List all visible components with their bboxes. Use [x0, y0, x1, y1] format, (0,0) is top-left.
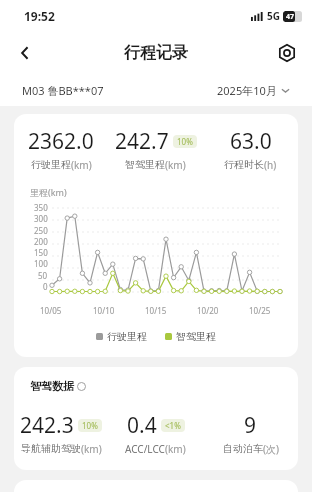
staticText: ACC/LCC: [125, 442, 165, 456]
staticText: 0: [43, 281, 48, 292]
button[interactable]: Back: [8, 36, 42, 70]
staticText: 250: [34, 225, 48, 236]
staticText: 300: [34, 213, 48, 224]
staticText: 10/10: [93, 305, 115, 316]
staticText: (h): [264, 158, 277, 172]
button[interactable]: 242.3: [14, 411, 108, 456]
staticText: 5G: [267, 9, 280, 23]
staticText: (km): [81, 442, 102, 456]
staticText: 242.3: [20, 411, 74, 440]
staticText: 行程时长: [224, 158, 264, 171]
button[interactable]: 63.0: [203, 127, 298, 172]
staticText: 100: [34, 258, 48, 269]
button[interactable]: Settings: [270, 36, 304, 70]
staticText: (km): [165, 442, 186, 456]
button[interactable]: 9: [203, 411, 298, 456]
staticText: 19:52: [24, 8, 55, 24]
staticText: 行驶里程: [107, 330, 147, 343]
staticText: 2025年10月: [217, 83, 277, 98]
staticText: 里程(km): [30, 186, 67, 198]
staticText: 10/20: [197, 305, 219, 316]
staticText: 150: [34, 247, 48, 258]
staticText: 50: [38, 270, 48, 281]
button[interactable]: 智驾数据: [30, 379, 86, 393]
staticText: 行程记录: [124, 43, 188, 63]
staticText: 10%: [82, 420, 98, 431]
staticText: 智驾里程: [125, 158, 165, 171]
staticText: 200: [34, 236, 48, 247]
staticText: 10/25: [249, 305, 271, 316]
staticText: 10/05: [40, 305, 62, 316]
staticText: 10%: [177, 136, 193, 147]
staticText: <1%: [165, 420, 181, 431]
staticText: M03 鲁BB***07: [22, 83, 104, 98]
staticText: (km): [71, 158, 92, 172]
staticText: 350: [34, 202, 48, 213]
staticText: (km): [165, 158, 186, 172]
staticText: 行驶里程: [31, 158, 71, 171]
staticText: 自动泊车: [223, 442, 263, 455]
button[interactable]: 2025年10月: [217, 83, 290, 98]
staticText: 0.4: [127, 411, 157, 440]
staticText: 63.0: [230, 127, 272, 156]
button[interactable]: 2362.0: [14, 127, 108, 172]
staticText: 47: [286, 12, 295, 22]
button[interactable]: 242.7: [108, 127, 203, 172]
staticText: 10/15: [145, 305, 167, 316]
staticText: (次): [263, 442, 279, 456]
staticText: 导航辅助驾驶: [21, 442, 81, 455]
staticText: 智驾数据: [30, 379, 74, 393]
button[interactable]: 0.4: [108, 411, 203, 456]
staticText: 242.7: [115, 127, 169, 156]
staticText: 智驾里程: [176, 330, 216, 343]
staticText: 2362.0: [28, 127, 94, 156]
staticText: 9: [244, 411, 257, 440]
